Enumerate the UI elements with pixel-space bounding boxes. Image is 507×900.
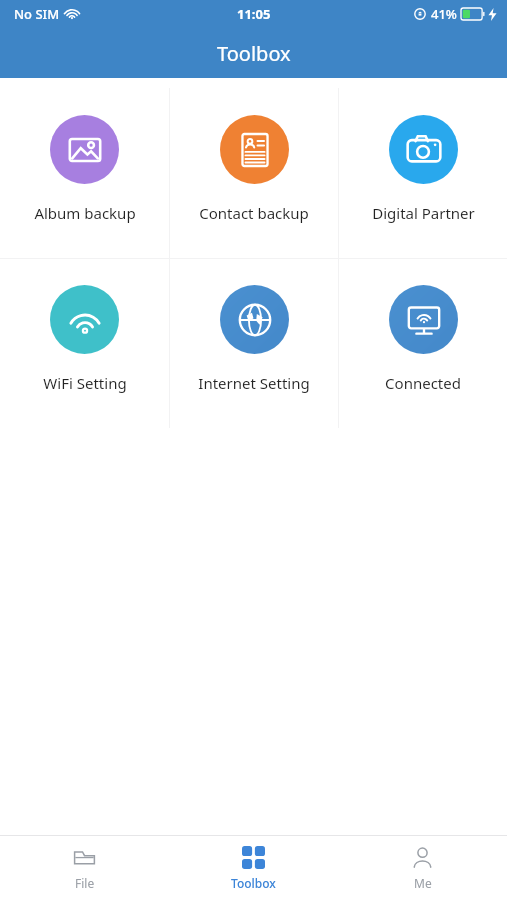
staticText: Toolbox [217,40,291,67]
staticText: File [75,875,95,891]
button[interactable]: Digital Partner [339,88,507,258]
staticText: Contact backup [199,203,309,223]
staticText: 41% [431,5,457,23]
button[interactable]: Me [338,836,507,900]
button[interactable]: Album backup [0,88,169,258]
staticText: Digital Partner [372,203,475,223]
staticText: Internet Setting [198,373,310,393]
button[interactable]: Contact backup [170,88,338,258]
button[interactable]: WiFi Setting [0,258,169,428]
staticText: WiFi Setting [43,373,127,393]
staticText: Connected [385,373,461,393]
staticText: No SIM [14,5,60,23]
staticText: 11:05 [237,5,271,23]
staticText: Album backup [34,203,136,223]
staticText: Me [414,875,432,891]
button[interactable]: File [0,836,169,900]
button[interactable]: Internet Setting [170,258,338,428]
button[interactable]: Toolbox [169,836,338,900]
staticText: Toolbox [231,875,276,891]
button[interactable]: Connected [339,258,507,428]
